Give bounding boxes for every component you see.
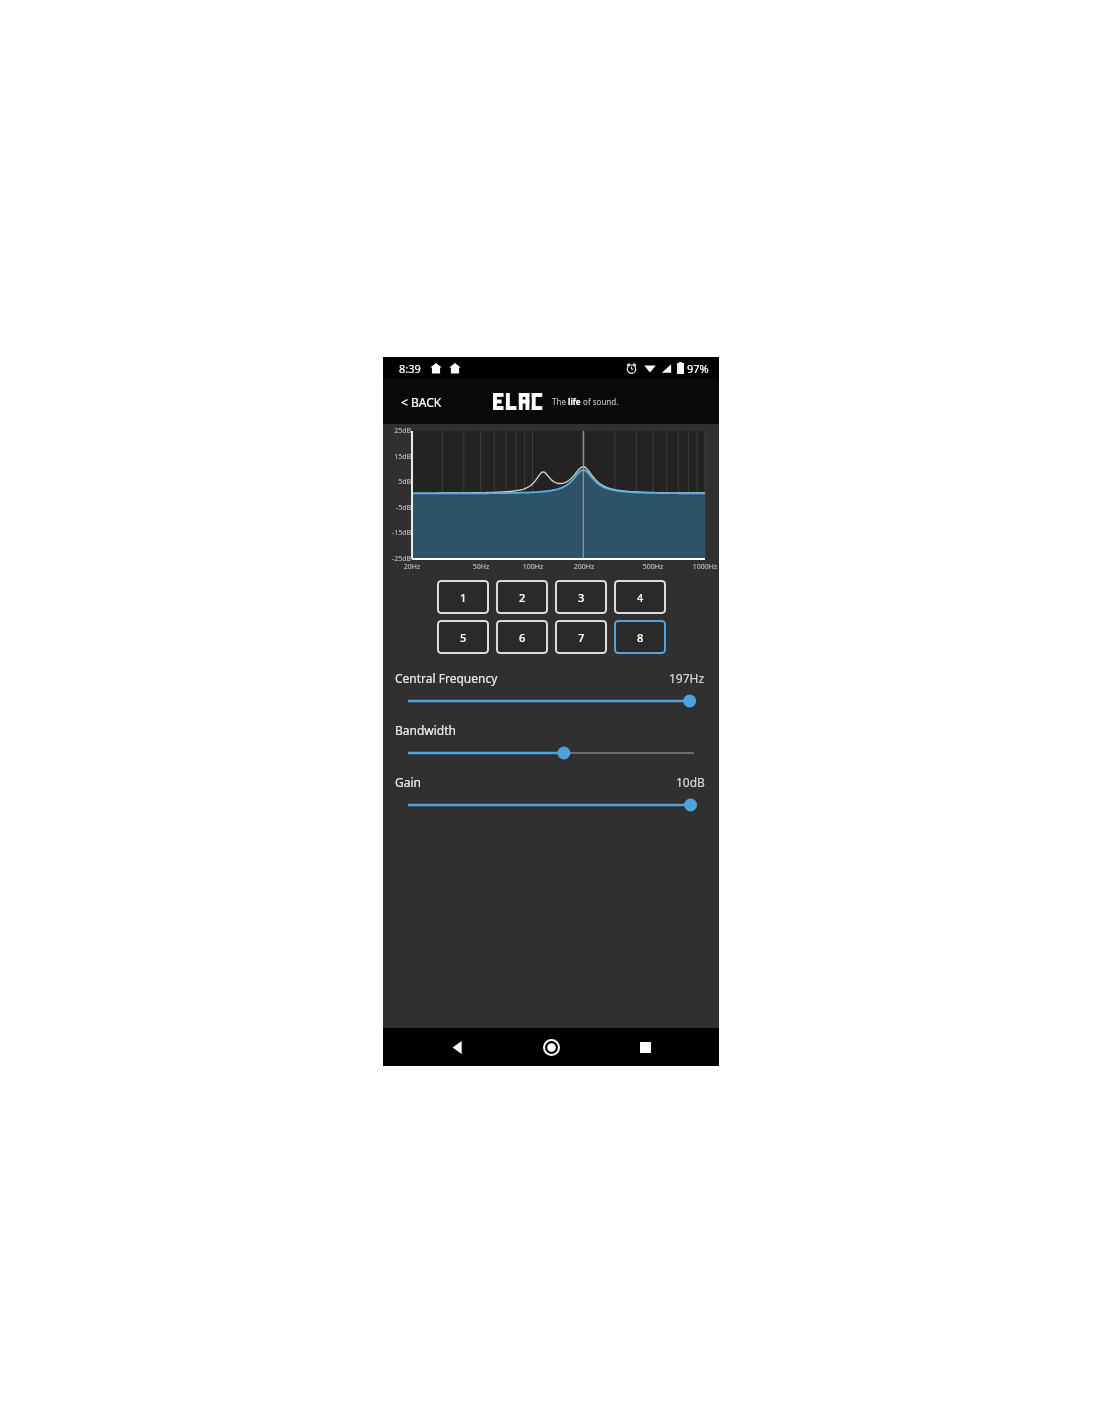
staticText: The (552, 396, 568, 407)
staticText: 4 (637, 590, 644, 605)
button[interactable]: Back (437, 1028, 477, 1066)
staticText: 7 (578, 630, 585, 645)
staticText: 1 (460, 590, 467, 605)
staticText: 8 (637, 630, 644, 645)
staticText: 8:39 (399, 361, 421, 376)
button[interactable]: 2 (496, 580, 548, 614)
button[interactable]: 3 (555, 580, 607, 614)
staticText: 197Hz (669, 670, 705, 686)
button[interactable]: 1 (437, 580, 489, 614)
button[interactable]: < BACK (383, 384, 460, 420)
staticText: of sound. (581, 396, 619, 407)
button[interactable]: 5 (437, 620, 489, 654)
staticText: < BACK (401, 394, 442, 410)
button[interactable]: 6 (496, 620, 548, 654)
staticText: 10dB (676, 774, 705, 790)
staticText: -5dB (383, 503, 411, 513)
staticText: -15dB (383, 528, 411, 538)
staticText: 200Hz (568, 562, 600, 572)
staticText: 25dB (383, 426, 411, 436)
staticText: 5 (460, 630, 467, 645)
staticText: 3 (578, 590, 585, 605)
button[interactable]: 7 (555, 620, 607, 654)
button[interactable]: 8 (614, 620, 666, 654)
staticText: 15dB (383, 452, 411, 462)
button[interactable]: Bandwidth (383, 738, 719, 768)
staticText: 6 (519, 630, 526, 645)
staticText: 50Hz (465, 562, 497, 572)
staticText: 20Hz (396, 562, 428, 572)
staticText: Gain (395, 774, 421, 790)
staticText: Central Frequency (395, 670, 498, 686)
staticText: 1000Hz (689, 562, 721, 572)
staticText: 2 (519, 590, 526, 605)
button[interactable]: Central Frequency (383, 686, 719, 716)
staticText: 97% (687, 361, 709, 376)
staticText: 5dB (383, 477, 411, 487)
button[interactable]: Recent apps (625, 1028, 665, 1066)
button[interactable]: Home (531, 1028, 571, 1066)
button[interactable]: 4 (614, 580, 666, 614)
staticText: Bandwidth (395, 722, 456, 738)
staticText: -25dB (383, 554, 411, 564)
button[interactable]: Gain (383, 790, 719, 820)
staticText: 100Hz (517, 562, 549, 572)
staticText: 500Hz (637, 562, 669, 572)
staticText: life (568, 396, 581, 407)
